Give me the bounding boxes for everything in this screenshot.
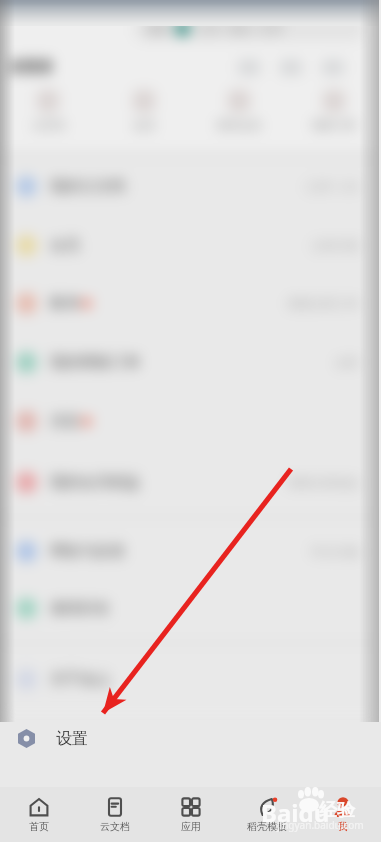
staticText: 文档 / 模板 / 应用 [197, 21, 283, 36]
staticText: 搜索 [147, 22, 169, 36]
button[interactable]: 我 [305, 787, 381, 842]
staticText: 消息 [50, 412, 80, 431]
staticText: 我的模板订单 [50, 353, 140, 372]
staticText: 云文档 [100, 820, 130, 833]
staticText: 查看全部权益 [287, 475, 359, 490]
staticText: 稻壳模板 [247, 820, 287, 833]
staticText: 我 [338, 820, 348, 833]
staticText: 邀请好友 [50, 599, 110, 618]
staticText: 经验 [319, 799, 355, 822]
staticText: 设置 [56, 729, 88, 749]
staticText: 首页 [29, 820, 49, 833]
staticText: 帮助与反馈 [50, 542, 125, 561]
staticText: 我的云文档 [50, 177, 125, 196]
staticText: Baidu [261, 796, 330, 829]
staticText: 应用 [181, 820, 201, 833]
staticText: 未登录 [8, 58, 53, 77]
staticText: 会员 [50, 236, 80, 255]
button[interactable]: 设置 [0, 722, 381, 755]
button[interactable]: 首页 [0, 787, 77, 842]
staticText: 我的会员权益 [50, 473, 140, 492]
button[interactable]: 稻壳模板 [229, 787, 305, 842]
staticText: 账单 [50, 294, 80, 313]
button[interactable]: 应用 [153, 787, 229, 842]
staticText: jingyan.baidu.com [277, 818, 364, 832]
staticText: 关于金山 [50, 670, 110, 689]
button[interactable]: 云文档 [77, 787, 153, 842]
